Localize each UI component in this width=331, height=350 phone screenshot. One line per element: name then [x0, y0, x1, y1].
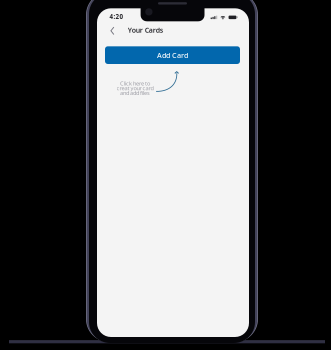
button[interactable]: Add Card: [105, 46, 240, 64]
staticText: creat your card: [116, 84, 153, 92]
staticText: 4:20: [109, 12, 123, 21]
staticText: Your Cards: [128, 25, 163, 35]
staticText: and add files: [120, 89, 150, 97]
staticText: Click here to: [120, 80, 150, 87]
staticText: Add Card: [157, 50, 188, 60]
button[interactable]: Back: [97, 8, 107, 17]
